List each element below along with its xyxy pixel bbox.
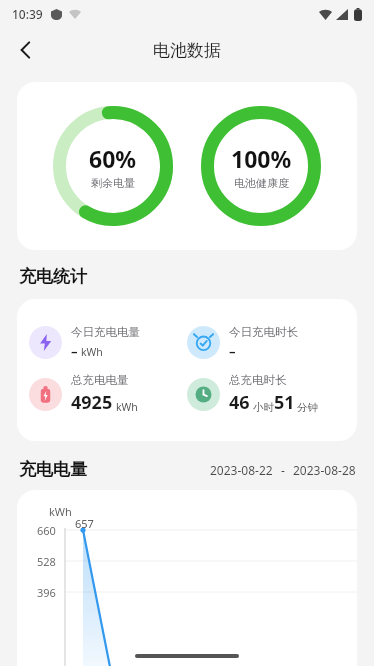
- staticText: –: [229, 342, 236, 360]
- staticText: 51: [274, 390, 295, 415]
- staticText: 充电统计: [19, 266, 87, 287]
- staticText: 2023-08-28: [293, 462, 356, 478]
- button[interactable]: kWh: [17, 490, 357, 666]
- staticText: kWh: [116, 400, 138, 414]
- staticText: 657: [75, 516, 94, 531]
- staticText: 总充电时长: [229, 373, 287, 387]
- staticText: 电池数据: [153, 40, 221, 61]
- staticText: kWh: [49, 504, 72, 519]
- staticText: 2023-08-22: [210, 462, 273, 478]
- staticText: 总充电电量: [71, 373, 129, 387]
- button[interactable]: 今日充电时长: [187, 325, 345, 360]
- button[interactable]: 总充电时长: [187, 373, 345, 415]
- staticText: 46: [229, 390, 250, 415]
- staticText: 充电电量: [19, 459, 87, 480]
- staticText: 电池健康度: [234, 176, 289, 190]
- button[interactable]: 今日充电电量: [29, 325, 187, 360]
- button[interactable]: 今日充电电量: [17, 299, 357, 441]
- staticText: 分钟: [297, 401, 318, 414]
- staticText: 396: [37, 585, 56, 600]
- staticText: 10:39: [12, 6, 43, 22]
- staticText: 今日充电时长: [229, 325, 298, 339]
- button[interactable]: 总充电电量: [29, 373, 187, 415]
- staticText: -: [281, 462, 285, 478]
- button[interactable]: 60%: [17, 82, 357, 250]
- staticText: 剩余电量: [91, 176, 135, 190]
- staticText: 60%: [89, 143, 137, 174]
- staticText: –: [71, 342, 78, 360]
- staticText: 4925: [71, 390, 113, 415]
- staticText: 528: [37, 554, 56, 569]
- button[interactable]: Back: [4, 28, 48, 72]
- staticText: 100%: [231, 143, 292, 174]
- staticText: 今日充电电量: [71, 325, 140, 339]
- staticText: 小时: [253, 401, 274, 414]
- staticText: kWh: [81, 345, 103, 359]
- button[interactable]: 2023-08-22: [210, 462, 356, 478]
- staticText: 660: [37, 523, 56, 538]
